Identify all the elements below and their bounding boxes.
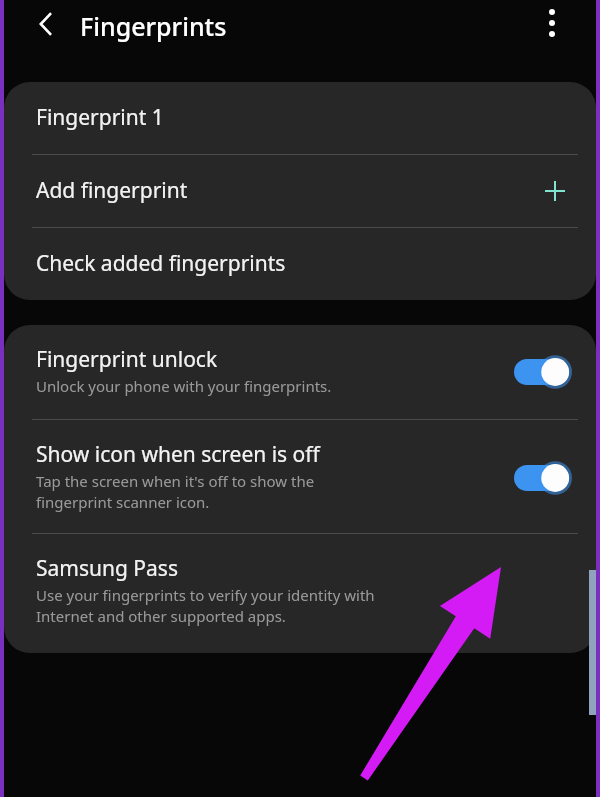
button[interactable]: Add fingerprint — [4, 155, 596, 227]
staticText: Unlock your phone with your fingerprints… — [36, 376, 332, 397]
staticText: Show icon when screen is off — [36, 442, 320, 468]
staticText: Fingerprints — [80, 9, 227, 43]
staticText: Fingerprint 1 — [36, 105, 164, 131]
button[interactable]: Fingerprint 1 — [4, 82, 596, 154]
staticText: Fingerprint unlock — [36, 347, 218, 373]
staticText: Add fingerprint — [36, 178, 188, 204]
button[interactable]: Fingerprint unlock — [4, 325, 596, 419]
staticText: Samsung Pass — [36, 556, 178, 582]
button[interactable]: Check added fingerprints — [4, 228, 596, 300]
button[interactable]: Back — [20, 0, 72, 48]
button[interactable]: More options — [530, 0, 574, 46]
staticText: Check added fingerprints — [36, 251, 286, 277]
button[interactable]: Samsung Pass — [4, 534, 596, 653]
staticText: Use your fingerprints to verify your ide… — [36, 585, 375, 627]
staticText: Tap the screen when it's off to show the… — [36, 471, 315, 513]
button[interactable]: Show icon when screen is off — [4, 420, 596, 533]
